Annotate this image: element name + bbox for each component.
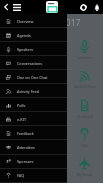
button[interactable]: Feedback — [68, 99, 101, 119]
staticText: Activity Feed — [17, 89, 40, 94]
button[interactable]: Conversations — [0, 56, 67, 70]
button[interactable]: Back — [0, 0, 11, 14]
staticText: Polls — [17, 103, 26, 108]
staticText: Speakers — [77, 55, 93, 60]
button[interactable]: Speakers — [68, 40, 101, 60]
button[interactable]: App logo — [46, 1, 58, 13]
button[interactable]: Sponsors — [0, 154, 67, 168]
button[interactable]: Notifications — [90, 0, 103, 14]
staticText: Feedback — [17, 131, 34, 136]
staticText: Conversations — [17, 61, 43, 66]
button[interactable]: Overview — [0, 14, 67, 28]
staticText: One on One Chat — [17, 75, 48, 80]
button[interactable]: One on One Chat — [0, 70, 67, 84]
staticText: Attendees — [17, 145, 35, 150]
button[interactable]: e-KIT — [0, 112, 67, 126]
button[interactable]: Speakers — [0, 42, 67, 56]
staticText: 2017 — [61, 17, 81, 29]
button[interactable]: Activity Feed — [68, 69, 101, 89]
staticText: Agenda — [17, 33, 31, 38]
button[interactable]: Activity Feed — [0, 84, 67, 98]
staticText: Feedback — [77, 114, 93, 119]
button[interactable]: FAQ — [0, 168, 67, 182]
staticText: Speakers — [17, 47, 34, 52]
button[interactable]: Polls — [0, 98, 67, 112]
button[interactable]: FAQ — [68, 128, 101, 148]
button[interactable]: Attendees — [0, 140, 67, 154]
staticText: Overview — [17, 19, 34, 24]
button[interactable]: My Travel — [68, 157, 101, 177]
staticText: Sponsors — [17, 159, 34, 164]
staticText: My Travel — [76, 172, 93, 177]
staticText: FAQ — [17, 173, 25, 178]
staticText: FAQ — [81, 143, 88, 148]
button[interactable]: Agenda — [0, 28, 67, 42]
button[interactable]: Menu — [11, 0, 23, 14]
button[interactable]: Refresh — [76, 0, 90, 14]
button[interactable]: Feedback — [0, 126, 67, 140]
staticText: e-KIT — [17, 117, 27, 122]
staticText: Activity Feed — [74, 84, 96, 89]
